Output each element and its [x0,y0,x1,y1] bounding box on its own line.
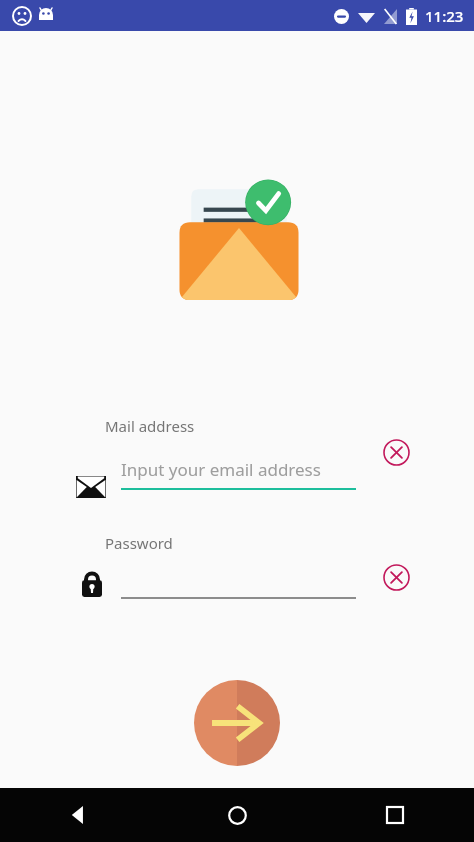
staticText: 11:23 [425,6,464,26]
button[interactable]: Home [158,788,316,842]
button[interactable]: Back [0,788,158,842]
button[interactable] [70,556,362,606]
staticText: Input your email address [121,458,321,481]
staticText: Mail address [105,416,195,436]
button[interactable]: Input your email address [70,456,362,501]
button[interactable]: Clear mail address [378,434,414,470]
button[interactable]: Recents [316,788,474,842]
staticText: Password [105,533,173,553]
button[interactable]: Submit [194,680,280,766]
button[interactable]: Clear password [378,559,414,595]
